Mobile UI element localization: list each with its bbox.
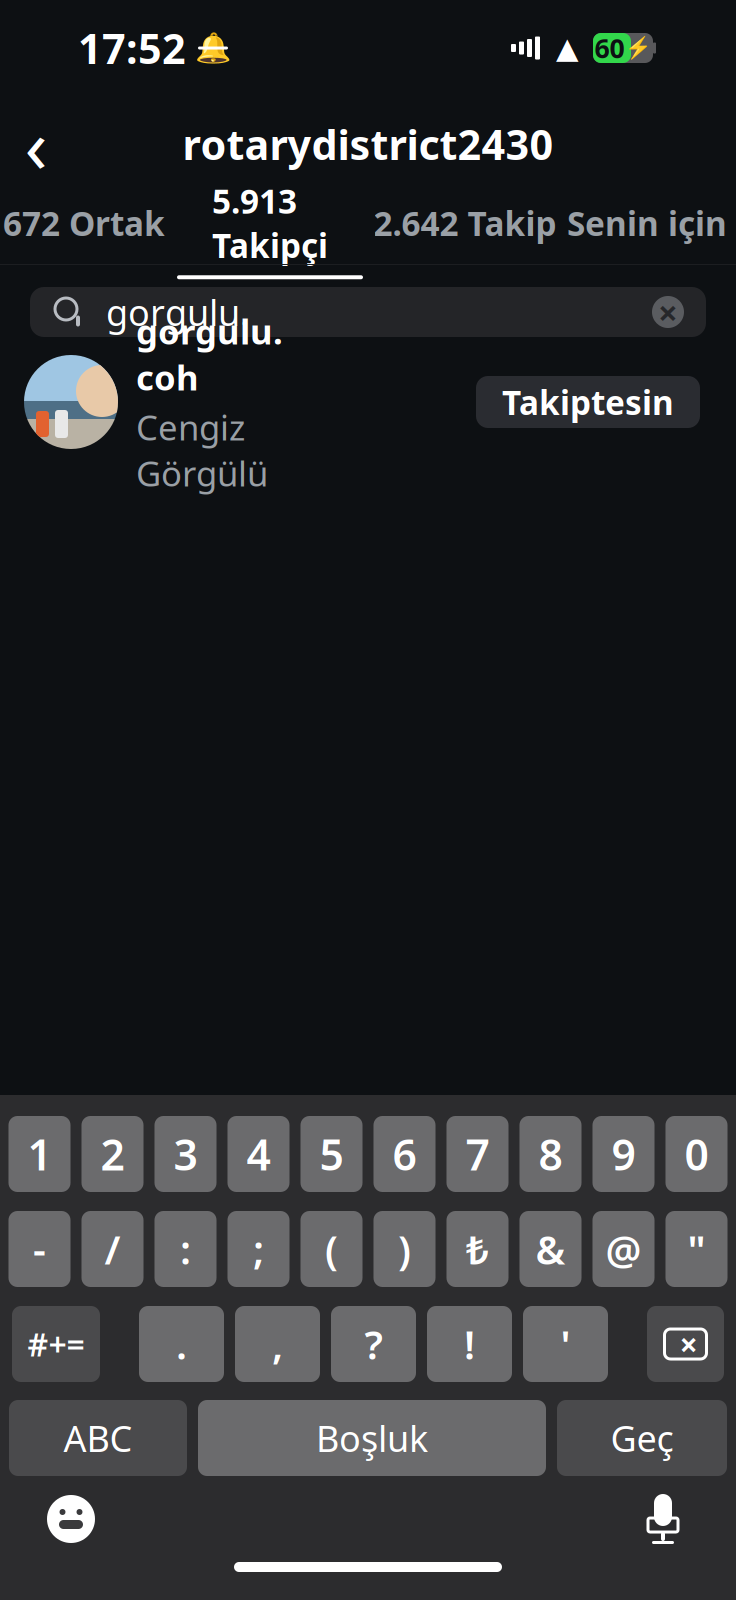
staticText: × bbox=[679, 1323, 697, 1365]
staticText: 9 bbox=[611, 1126, 635, 1182]
button[interactable]: Geç bbox=[557, 1400, 727, 1476]
staticText: Boşluk bbox=[316, 1414, 428, 1462]
staticText: ; bbox=[253, 1222, 264, 1275]
button[interactable]: ) bbox=[373, 1211, 435, 1287]
staticText: Senin için bbox=[567, 201, 727, 245]
button[interactable]: 6 bbox=[373, 1116, 435, 1192]
button[interactable]: & bbox=[519, 1211, 581, 1287]
staticText: 17:52 bbox=[78, 21, 186, 75]
button[interactable]: gorgulu.coh bbox=[0, 347, 736, 457]
button[interactable]: 7 bbox=[446, 1116, 508, 1192]
staticText: 3 bbox=[173, 1126, 197, 1182]
staticText: ? bbox=[364, 1317, 382, 1370]
staticText: Cengiz Görgülü bbox=[136, 404, 268, 496]
button[interactable]: 4 bbox=[227, 1116, 289, 1192]
staticText: - bbox=[33, 1222, 46, 1275]
button[interactable]: ' bbox=[523, 1306, 608, 1382]
staticText: ! bbox=[464, 1317, 475, 1370]
button[interactable]: Boşluk bbox=[198, 1400, 546, 1476]
staticText: @ bbox=[605, 1222, 641, 1275]
button[interactable]: 0 bbox=[665, 1116, 727, 1192]
button[interactable]: gorgulu. bbox=[30, 287, 706, 337]
staticText: ▲ bbox=[556, 31, 579, 65]
staticText: gorgulu. bbox=[106, 288, 250, 336]
staticText: ⚡ bbox=[624, 36, 651, 60]
button[interactable]: ; bbox=[227, 1211, 289, 1287]
staticText: ' bbox=[560, 1317, 570, 1370]
staticText: 2 bbox=[100, 1126, 124, 1182]
staticText: " bbox=[687, 1222, 705, 1275]
staticText: 0 bbox=[684, 1126, 708, 1182]
staticText: / bbox=[104, 1222, 120, 1275]
button[interactable]: @ bbox=[592, 1211, 654, 1287]
button[interactable]: #+= bbox=[12, 1306, 100, 1382]
button[interactable]: Delete bbox=[647, 1306, 724, 1382]
button[interactable]: ABC bbox=[9, 1400, 187, 1476]
staticText: 7 bbox=[465, 1126, 489, 1182]
button[interactable]: 9 bbox=[592, 1116, 654, 1192]
button[interactable]: ? bbox=[331, 1306, 416, 1382]
staticText: 1 bbox=[27, 1126, 51, 1182]
staticText: ‹ bbox=[24, 94, 47, 194]
button[interactable]: Takiptesin bbox=[476, 376, 700, 428]
button[interactable]: 1 bbox=[8, 1116, 70, 1192]
button[interactable]: " bbox=[665, 1211, 727, 1287]
staticText: ABC bbox=[63, 1414, 132, 1462]
staticText: & bbox=[535, 1222, 565, 1275]
staticText: rotarydistrict2430 bbox=[182, 117, 553, 171]
button[interactable]: Emoji bbox=[36, 1484, 106, 1554]
button[interactable]: 2.642 Takip bbox=[372, 186, 558, 264]
staticText: 8 bbox=[538, 1126, 562, 1182]
staticText: , bbox=[272, 1317, 283, 1370]
staticText: #+= bbox=[27, 1323, 84, 1365]
staticText: . bbox=[176, 1317, 187, 1370]
staticText: 6 bbox=[392, 1126, 416, 1182]
staticText: 4 bbox=[246, 1126, 270, 1182]
staticText: ₺ bbox=[466, 1222, 489, 1275]
button[interactable]: ! bbox=[427, 1306, 512, 1382]
button[interactable]: 672 Ortak bbox=[0, 186, 168, 264]
staticText: 2.642 Takip bbox=[373, 201, 556, 245]
staticText: × bbox=[658, 289, 678, 335]
staticText: gorgulu.coh bbox=[136, 308, 283, 400]
staticText: Geç bbox=[610, 1414, 673, 1462]
staticText: Takiptesin bbox=[502, 380, 674, 424]
button[interactable]: 5 bbox=[300, 1116, 362, 1192]
button[interactable]: , bbox=[235, 1306, 320, 1382]
button[interactable]: ( bbox=[300, 1211, 362, 1287]
staticText: 672 Ortak bbox=[3, 201, 165, 245]
button[interactable]: : bbox=[154, 1211, 216, 1287]
staticText: ( bbox=[325, 1222, 338, 1275]
button[interactable]: Senin için bbox=[558, 186, 736, 264]
button[interactable]: 5.913 Takipçi bbox=[168, 186, 372, 264]
staticText: 5.913 Takipçi bbox=[212, 179, 328, 267]
staticText: 60 bbox=[594, 30, 624, 66]
staticText: 5 bbox=[319, 1126, 343, 1182]
staticText: ) bbox=[398, 1222, 411, 1275]
button[interactable]: 3 bbox=[154, 1116, 216, 1192]
button[interactable]: 8 bbox=[519, 1116, 581, 1192]
button[interactable]: 2 bbox=[81, 1116, 143, 1192]
button[interactable]: Back bbox=[0, 108, 72, 180]
button[interactable]: . bbox=[139, 1306, 224, 1382]
button[interactable]: ₺ bbox=[446, 1211, 508, 1287]
staticText: : bbox=[180, 1222, 191, 1275]
button[interactable]: - bbox=[8, 1211, 70, 1287]
button[interactable]: / bbox=[81, 1211, 143, 1287]
button[interactable]: Dictation bbox=[628, 1484, 698, 1554]
staticText: 🔔 bbox=[194, 31, 231, 65]
